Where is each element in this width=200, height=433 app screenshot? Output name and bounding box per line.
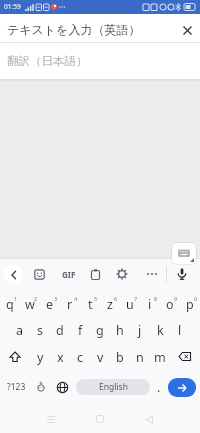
button[interactable]: r [60, 291, 80, 317]
staticText: 6 [114, 295, 118, 302]
button[interactable]: u [120, 291, 140, 317]
staticText: 01:59 [4, 2, 21, 11]
button[interactable] [28, 260, 50, 288]
button[interactable]: z [100, 291, 120, 317]
staticText: z [107, 296, 113, 313]
button[interactable] [32, 372, 50, 402]
button[interactable]: m [150, 343, 170, 371]
button[interactable]: i [140, 291, 160, 317]
button[interactable] [136, 406, 162, 432]
button[interactable]: h [110, 317, 130, 343]
button[interactable]: w [20, 291, 40, 317]
staticText: f [78, 322, 83, 339]
button[interactable]: e [40, 291, 60, 317]
button[interactable]: g [90, 317, 110, 343]
staticText: g [96, 322, 104, 339]
button[interactable] [2, 260, 24, 288]
button[interactable]: t [80, 291, 100, 317]
staticText: ?123 [7, 381, 26, 393]
staticText: u [126, 296, 134, 313]
staticText: 1 [14, 295, 18, 302]
button[interactable]: ?123 [0, 372, 32, 402]
button[interactable] [172, 243, 196, 264]
button[interactable]: q [0, 291, 20, 317]
button[interactable] [140, 260, 164, 288]
staticText: e [46, 296, 54, 313]
staticText: p [186, 296, 194, 313]
staticText: l [178, 322, 182, 339]
staticText: 8 [154, 295, 158, 302]
button[interactable]: a [10, 317, 30, 343]
staticText: . [157, 379, 161, 396]
staticText: 2 [34, 295, 38, 302]
button[interactable]: . [152, 372, 166, 402]
staticText: テキストを入力（英語） [7, 22, 141, 37]
staticText: 翻訳（日本語） [7, 54, 88, 68]
staticText: h [116, 322, 124, 339]
staticText: v [97, 349, 104, 366]
button[interactable] [50, 372, 74, 402]
staticText: 5 [94, 295, 98, 302]
staticText: q [6, 296, 14, 313]
button[interactable]: b [110, 343, 130, 371]
button[interactable] [0, 343, 30, 371]
staticText: y [37, 349, 44, 366]
button[interactable]: p [180, 291, 200, 317]
button[interactable]: y [30, 343, 50, 371]
button[interactable]: c [70, 343, 90, 371]
button[interactable]: l [170, 317, 190, 343]
button[interactable] [87, 406, 113, 432]
button[interactable]: s [30, 317, 50, 343]
staticText: t [88, 296, 93, 313]
button[interactable] [84, 260, 106, 288]
button[interactable] [178, 21, 196, 39]
staticText: s [37, 322, 43, 339]
button[interactable] [111, 260, 133, 288]
button[interactable] [170, 343, 200, 371]
staticText: 9 [174, 295, 178, 302]
staticText: r [67, 296, 73, 313]
button[interactable]: x [50, 343, 70, 371]
button[interactable]: d [50, 317, 70, 343]
button[interactable]: テキストを入力（英語） [0, 14, 200, 42]
button[interactable]: n [130, 343, 150, 371]
button[interactable]: j [130, 317, 150, 343]
staticText: d [56, 322, 64, 339]
button[interactable]: GIF [56, 260, 82, 288]
staticText: English [99, 381, 128, 393]
button[interactable]: v [90, 343, 110, 371]
button[interactable]: k [150, 317, 170, 343]
button[interactable] [166, 372, 198, 402]
button[interactable] [170, 260, 194, 288]
staticText: k [157, 322, 164, 339]
staticText: n [136, 349, 144, 366]
button[interactable]: o [160, 291, 180, 317]
staticText: w [25, 296, 35, 313]
button[interactable]: f [70, 317, 90, 343]
staticText: 4 [74, 295, 78, 302]
button[interactable]: English [74, 372, 152, 402]
staticText: c [77, 349, 84, 366]
staticText: a [16, 322, 24, 339]
staticText: 0 [194, 295, 198, 302]
staticText: m [154, 349, 166, 366]
staticText: j [138, 322, 142, 339]
staticText: GIF [62, 269, 76, 280]
staticText: i [148, 296, 152, 313]
staticText: b [116, 349, 124, 366]
staticText: 3 [54, 295, 58, 302]
staticText: o [166, 296, 174, 313]
staticText: x [57, 349, 64, 366]
button[interactable] [38, 406, 64, 432]
staticText: 7 [134, 295, 138, 302]
